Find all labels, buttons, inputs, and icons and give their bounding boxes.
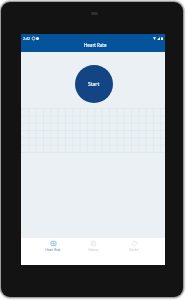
staticText: Heart Rate: [84, 42, 107, 48]
button[interactable]: Device: [116, 238, 152, 265]
staticText: History: [88, 248, 99, 252]
button[interactable]: Heart Rate: [35, 238, 71, 265]
staticText: Device: [129, 248, 139, 252]
staticText: Start: [88, 81, 100, 88]
button[interactable]: Start: [75, 65, 113, 103]
staticText: Heart Rate: [45, 248, 61, 252]
button[interactable]: History: [75, 238, 111, 265]
staticText: 2:42: [23, 36, 31, 41]
